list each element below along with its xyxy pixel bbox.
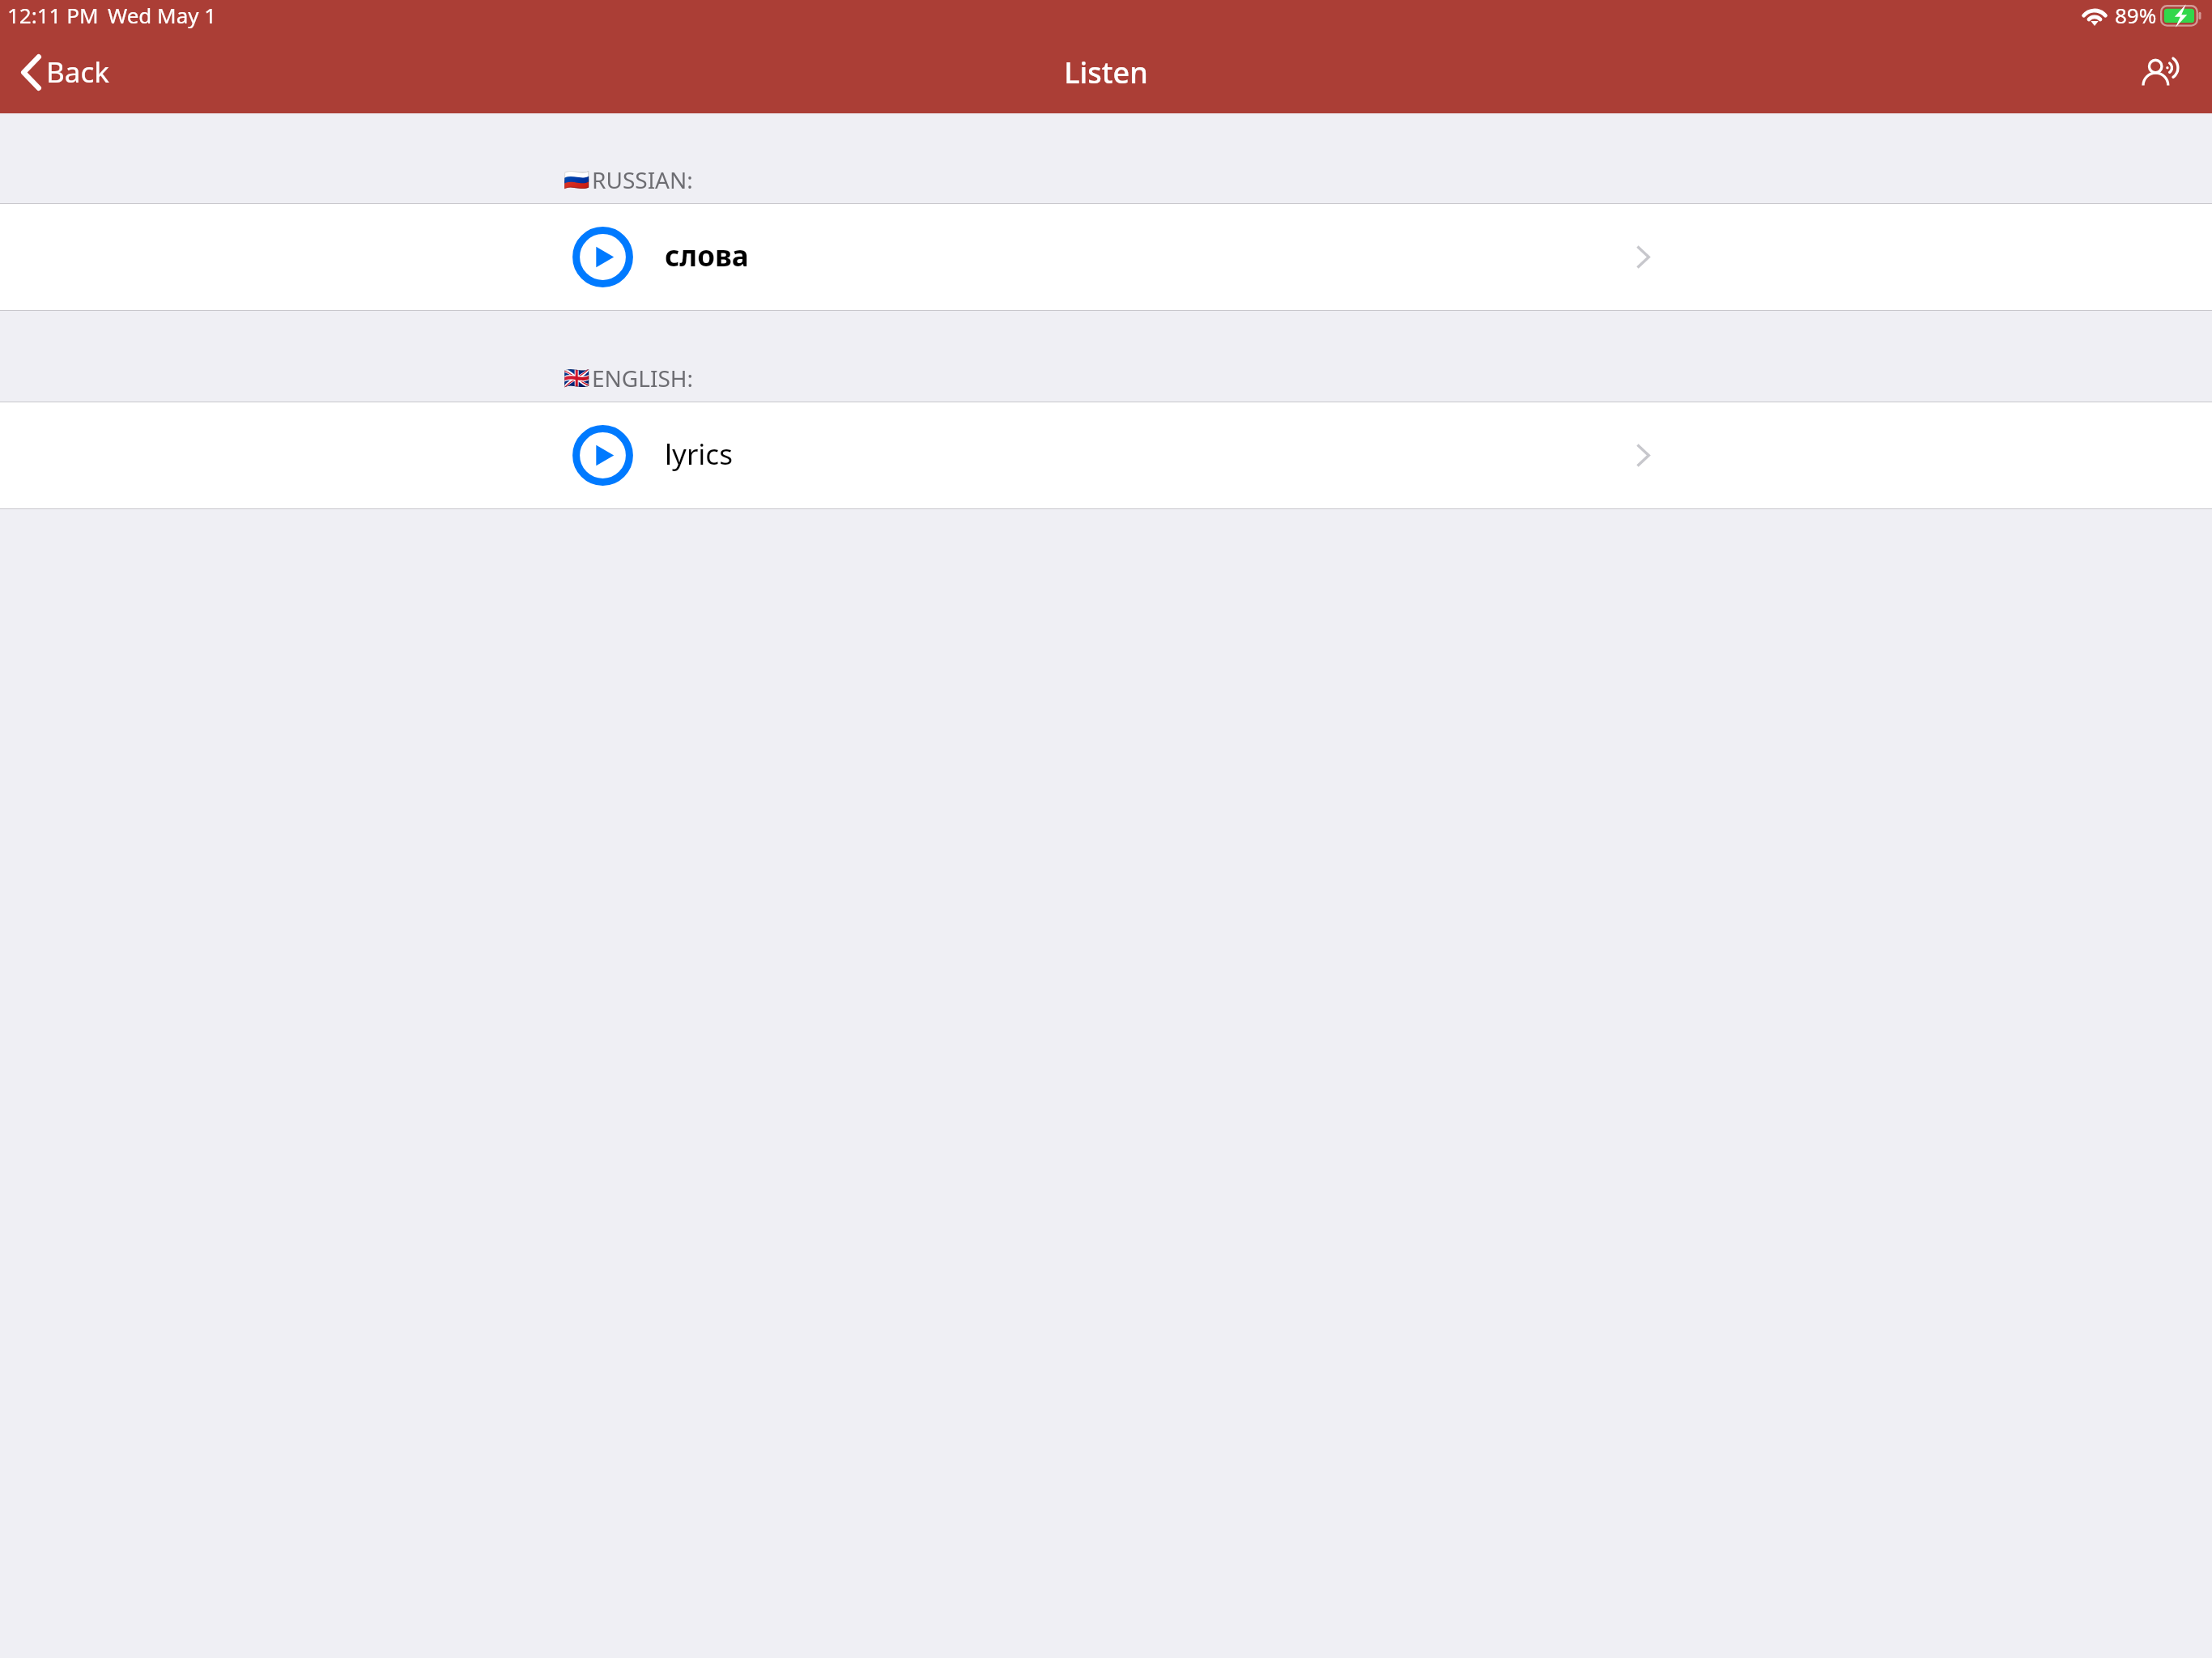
button[interactable]: Play lyrics xyxy=(572,425,633,486)
staticText: 12:11 PM xyxy=(7,1,99,29)
staticText: 🇷🇺 xyxy=(564,168,590,192)
button[interactable]: Play слова xyxy=(0,204,2212,310)
button[interactable]: Speak xyxy=(2133,49,2190,96)
staticText: Back xyxy=(46,53,109,91)
button[interactable]: Play lyrics xyxy=(0,402,2212,508)
staticText: слова xyxy=(665,236,749,275)
staticText: 89% xyxy=(2115,1,2157,29)
staticText: ENGLISH: xyxy=(592,363,694,393)
button[interactable]: Play слова xyxy=(572,227,633,287)
staticText: 🇬🇧 xyxy=(564,366,590,390)
staticText: RUSSIAN: xyxy=(592,164,693,195)
staticText: Wed May 1 xyxy=(108,1,217,29)
staticText: lyrics xyxy=(665,435,733,474)
staticText: Listen xyxy=(1064,53,1148,92)
button[interactable]: Back xyxy=(0,40,124,104)
